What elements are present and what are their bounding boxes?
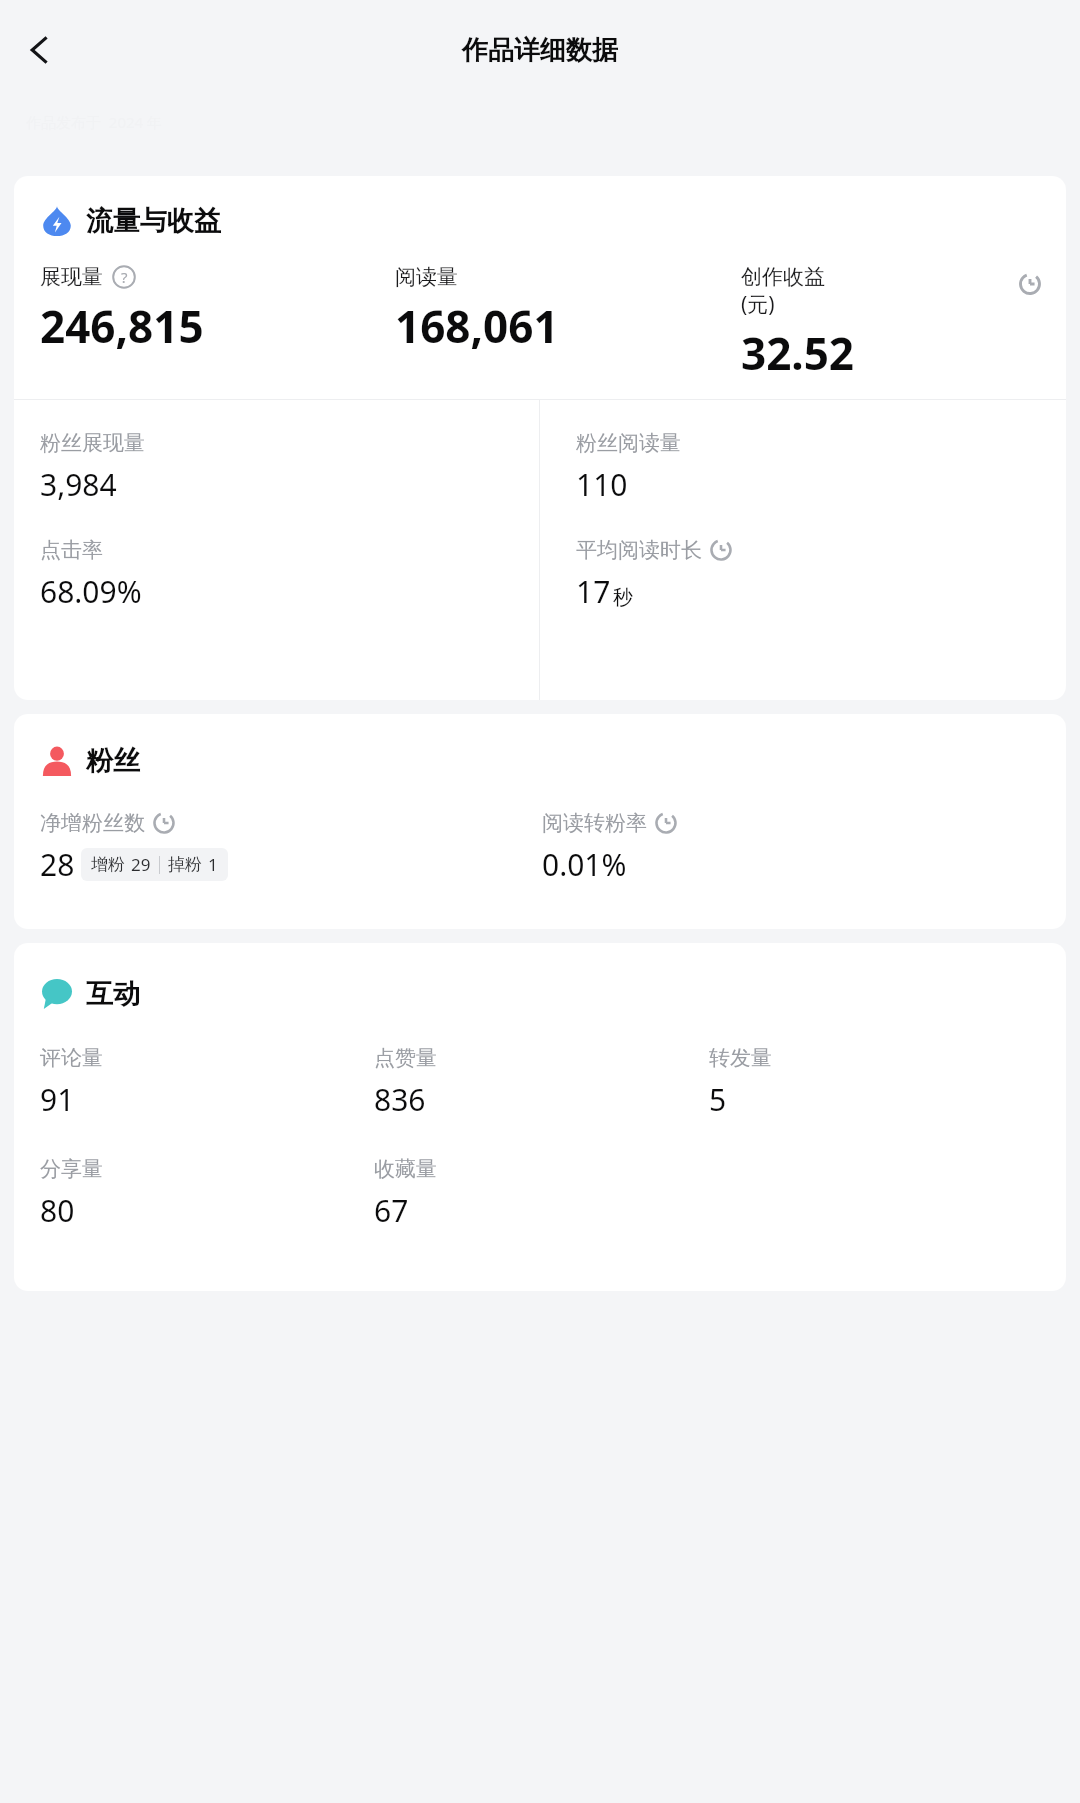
staticText: 粉丝阅读量 — [576, 430, 681, 456]
staticText: 68.09% — [40, 571, 142, 612]
staticText: 836 — [374, 1079, 426, 1120]
staticText: 17 — [576, 571, 611, 612]
staticText: 28 — [40, 844, 75, 885]
staticText: 32.52 — [741, 323, 855, 383]
staticText: 粉丝展现量 — [40, 430, 145, 456]
staticText: 点击率 — [40, 537, 103, 563]
staticText: 110 — [576, 464, 628, 505]
button[interactable]: 数据延迟说明 — [1016, 270, 1044, 298]
staticText: 净增粉丝数 — [40, 810, 145, 836]
staticText: 收藏量 — [374, 1156, 437, 1182]
staticText: 67 — [374, 1190, 409, 1231]
staticText: 增粉 — [91, 854, 125, 875]
staticText: 80 — [40, 1190, 75, 1231]
staticText: 阅读转粉率 — [542, 810, 647, 836]
button[interactable]: 互动 — [14, 943, 1066, 1291]
staticText: 作品详细数据 — [462, 34, 618, 67]
button[interactable]: 粉丝 — [14, 714, 1066, 929]
staticText: 点赞量 — [374, 1045, 437, 1071]
staticText: 5 — [709, 1079, 727, 1120]
staticText: 展现量 — [40, 264, 103, 290]
staticText: 平均阅读时长 — [576, 537, 702, 563]
staticText: 29 — [131, 853, 151, 876]
staticText: (元) — [741, 290, 775, 319]
staticText: 246,815 — [40, 296, 204, 356]
staticText: ? — [121, 267, 128, 287]
staticText: 0.01% — [542, 844, 627, 885]
staticText: 分享量 — [40, 1156, 103, 1182]
button[interactable]: 流量与收益 — [14, 176, 1066, 700]
staticText: 秒 — [613, 585, 633, 610]
staticText: 流量与收益 — [86, 204, 221, 238]
staticText: 阅读量 — [395, 264, 458, 290]
staticText: 粉丝 — [86, 744, 140, 778]
staticText: 互动 — [86, 977, 140, 1011]
staticText: 1 — [208, 853, 218, 876]
staticText: 转发量 — [709, 1045, 772, 1071]
staticText: 3,984 — [40, 464, 117, 505]
staticText: 168,061 — [395, 296, 559, 356]
staticText: 掉粉 — [168, 854, 202, 875]
button[interactable]: Back — [8, 18, 72, 82]
staticText: 创作收益 — [741, 264, 825, 290]
button[interactable]: 展现量说明 — [111, 264, 137, 290]
staticText: 91 — [40, 1079, 75, 1120]
staticText: 评论量 — [40, 1045, 103, 1071]
